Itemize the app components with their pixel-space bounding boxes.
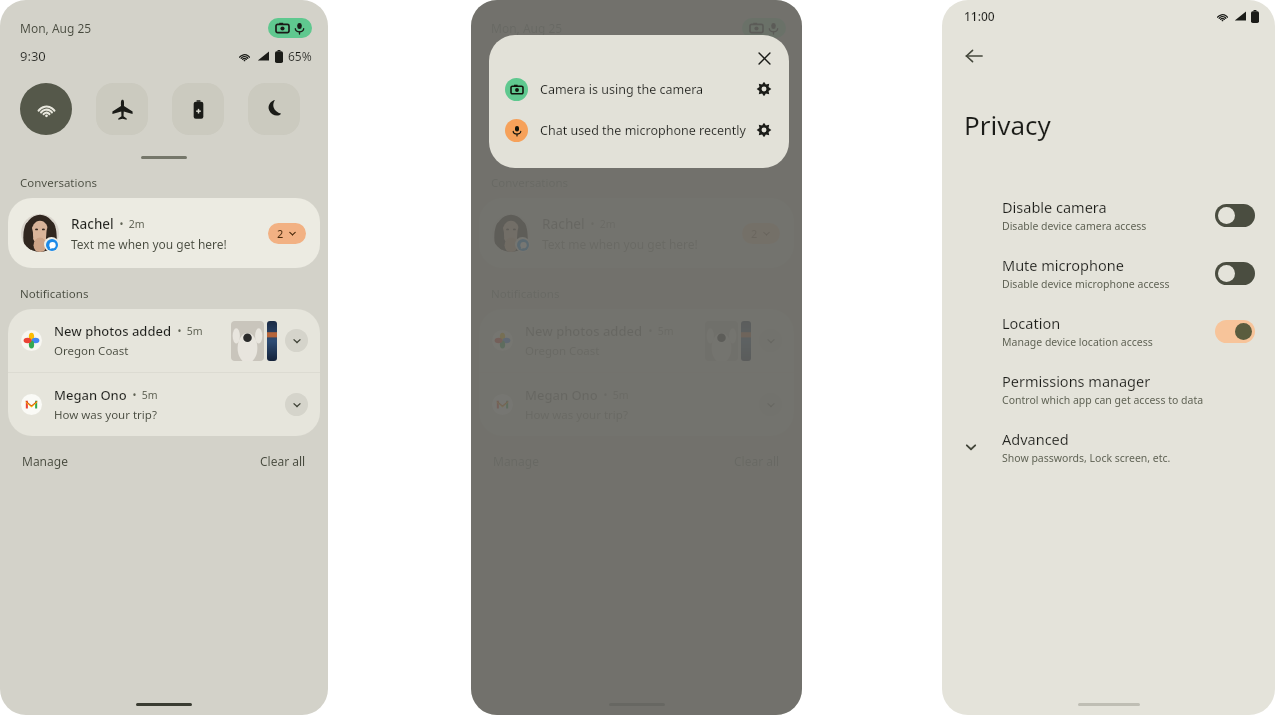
staticText: • 5m	[172, 324, 203, 338]
button[interactable]: Camera is using the camera	[489, 76, 789, 102]
staticText: Clear all	[260, 453, 306, 469]
button[interactable]: Advanced	[942, 418, 1275, 476]
staticText: Mon, Aug 25	[491, 20, 563, 36]
staticText: Show passwords, Lock screen, etc.	[1002, 451, 1171, 465]
button[interactable]: Camera and microphone in use	[268, 18, 312, 38]
button[interactable]: Settings	[751, 117, 777, 143]
staticText: Privacy	[964, 107, 1051, 142]
staticText: Notifications	[20, 286, 89, 302]
button[interactable]: Close	[751, 45, 777, 71]
button[interactable]: On	[1215, 320, 1255, 343]
staticText: • 2m	[114, 217, 145, 231]
button[interactable]: Airplane mode	[96, 83, 148, 135]
staticText: Chat used the microphone recently	[540, 122, 746, 139]
button[interactable]: Location	[942, 302, 1275, 360]
button[interactable]: Rachel	[479, 198, 794, 268]
button[interactable]: Dark theme	[248, 83, 300, 135]
staticText: 2	[277, 226, 284, 241]
staticText: 9:30	[20, 47, 46, 65]
button[interactable]: Back	[956, 38, 992, 74]
staticText: Manage device location access	[1002, 335, 1153, 349]
button[interactable]: Mute microphone	[942, 244, 1275, 302]
staticText: Text me when you get here!	[71, 236, 227, 252]
button[interactable]: Chat used the microphone recently	[489, 117, 789, 143]
staticText: Advanced	[1002, 429, 1069, 449]
button[interactable]: Wi-Fi	[20, 83, 72, 135]
staticText: 11:00	[964, 8, 995, 24]
button[interactable]: Expand notification	[285, 329, 308, 352]
staticText: Rachel	[542, 215, 585, 233]
staticText: New photos added	[54, 322, 172, 340]
button[interactable]: New photos added	[8, 309, 320, 372]
button[interactable]: Settings	[751, 76, 777, 102]
button[interactable]: Airplane mode	[567, 83, 619, 135]
staticText: New photos added	[525, 322, 643, 340]
button[interactable]: Manage	[20, 451, 70, 471]
staticText: Permissions manager	[1002, 371, 1151, 391]
staticText: Megan Ono	[54, 386, 127, 404]
button[interactable]: Permissions manager	[942, 360, 1275, 418]
button[interactable]: Expand, 2 messages	[268, 223, 306, 244]
staticText: Camera is using the camera	[540, 81, 704, 98]
staticText: Mon, Aug 25	[20, 20, 92, 36]
button[interactable]: Rachel	[8, 198, 320, 268]
staticText: Rachel	[71, 215, 114, 233]
staticText: Control which app can get access to data	[1002, 393, 1204, 407]
button[interactable]: Disable camera	[942, 186, 1275, 244]
staticText: How was your trip?	[54, 407, 157, 423]
staticText: Disable device microphone access	[1002, 277, 1170, 291]
button[interactable]: Wi-Fi	[491, 83, 543, 135]
button[interactable]: Expand notification	[285, 393, 308, 416]
button[interactable]: Off	[1215, 204, 1255, 227]
staticText: Megan Ono	[525, 386, 598, 404]
staticText: 65%	[288, 48, 312, 64]
button[interactable]: Clear all	[258, 451, 308, 471]
button[interactable]: New photos added	[479, 309, 794, 372]
staticText: Conversations	[20, 175, 98, 191]
staticText: • 5m	[127, 388, 158, 402]
button[interactable]: Off	[1215, 262, 1255, 285]
button[interactable]: Camera and microphone in use	[742, 18, 786, 38]
button[interactable]: Battery saver	[172, 83, 224, 135]
button[interactable]: Battery saver	[643, 83, 695, 135]
button[interactable]: Dark theme	[719, 83, 771, 135]
staticText: Mute microphone	[1002, 255, 1124, 275]
staticText: Manage	[22, 453, 68, 469]
button[interactable]: Megan Ono	[8, 373, 320, 436]
staticText: Disable camera	[1002, 197, 1107, 217]
staticText: Disable device camera access	[1002, 219, 1147, 233]
staticText: 9:30	[491, 47, 517, 65]
staticText: Oregon Coast	[54, 343, 129, 359]
staticText: 65%	[762, 48, 786, 64]
staticText: Location	[1002, 313, 1061, 333]
